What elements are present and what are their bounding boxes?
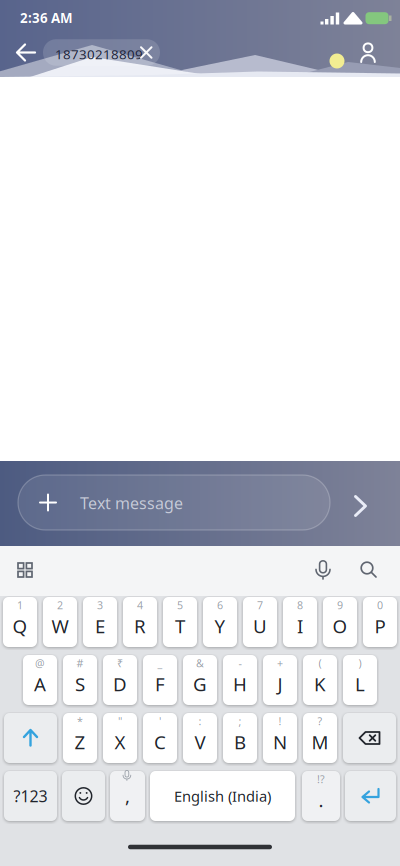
staticText: '	[159, 714, 161, 728]
staticText: W	[51, 614, 68, 638]
staticText: D	[113, 672, 127, 696]
staticText: ?123	[13, 785, 47, 807]
button[interactable]: Back	[15, 42, 37, 62]
staticText: Z	[74, 730, 85, 754]
button[interactable]: Search	[360, 561, 377, 578]
button[interactable]: Send	[353, 494, 367, 517]
staticText: C	[154, 730, 166, 754]
staticText: V	[194, 730, 205, 754]
button[interactable]: 4	[123, 597, 157, 647]
button[interactable]: English (India)	[150, 771, 295, 821]
staticText: M	[311, 730, 328, 754]
button[interactable]: _	[143, 655, 177, 705]
staticText: I	[297, 614, 303, 638]
button[interactable]: Text message	[18, 475, 330, 530]
button[interactable]: Shift	[4, 713, 57, 763]
button[interactable]: 0	[363, 597, 397, 647]
staticText: E	[95, 614, 105, 638]
staticText: H	[233, 672, 247, 696]
button[interactable]: (	[303, 655, 337, 705]
button[interactable]: '	[143, 713, 177, 763]
staticText: L	[355, 672, 365, 696]
staticText: X	[114, 730, 125, 754]
staticText: J	[277, 672, 282, 696]
button[interactable]: !	[263, 713, 297, 763]
staticText: ₹	[117, 656, 123, 670]
staticText: 5	[177, 598, 183, 612]
staticText: +	[277, 656, 283, 670]
button[interactable]: ₹	[103, 655, 137, 705]
staticText: F	[155, 672, 165, 696]
staticText: 2:36 AM	[20, 9, 73, 27]
staticText: @	[35, 656, 45, 670]
staticText: (	[318, 656, 321, 670]
staticText: ;	[238, 714, 241, 728]
button[interactable]: Keyboard options	[17, 562, 33, 578]
button[interactable]: :	[183, 713, 217, 763]
button[interactable]: "	[103, 713, 137, 763]
button[interactable]: Add contact	[357, 42, 379, 63]
staticText: 4	[137, 598, 143, 612]
button[interactable]: 1	[3, 597, 37, 647]
staticText: English (India)	[174, 786, 271, 806]
staticText: 9	[337, 598, 343, 612]
staticText: #	[76, 656, 83, 670]
staticText: Q	[12, 614, 27, 638]
staticText: S	[75, 672, 85, 696]
button[interactable]: 9	[323, 597, 357, 647]
staticText: P	[374, 614, 385, 638]
staticText: :	[198, 714, 201, 728]
button[interactable]: 3	[83, 597, 117, 647]
staticText: N	[273, 730, 287, 754]
staticText: -	[238, 656, 241, 670]
staticText: 1	[17, 598, 23, 612]
button[interactable]: *	[63, 713, 97, 763]
button[interactable]: +	[263, 655, 297, 705]
staticText: T	[175, 614, 185, 638]
button[interactable]: Voice input	[315, 560, 331, 580]
staticText: "	[118, 714, 122, 728]
staticText: 2	[57, 598, 63, 612]
staticText: ?	[317, 714, 322, 728]
button[interactable]: ?	[303, 713, 337, 763]
button[interactable]: @	[23, 655, 57, 705]
button[interactable]: -	[223, 655, 257, 705]
button[interactable]: )	[343, 655, 377, 705]
staticText: )	[358, 656, 361, 670]
staticText: 18730218809	[55, 45, 143, 63]
staticText: !	[278, 714, 281, 728]
staticText: &	[196, 656, 204, 670]
button[interactable]: #	[63, 655, 97, 705]
button[interactable]: Delete	[343, 713, 396, 763]
staticText: !?	[317, 772, 325, 786]
staticText: .	[318, 788, 323, 812]
staticText: _	[157, 656, 162, 670]
staticText: R	[134, 614, 146, 638]
button[interactable]: &	[183, 655, 217, 705]
button[interactable]: Enter	[345, 771, 396, 821]
button[interactable]: ;	[223, 713, 257, 763]
staticText: B	[234, 730, 246, 754]
staticText: Text message	[80, 492, 183, 514]
staticText: ,	[125, 784, 130, 808]
staticText: G	[193, 672, 207, 696]
staticText: K	[314, 672, 326, 696]
button[interactable]: 5	[163, 597, 197, 647]
button[interactable]: 8	[283, 597, 317, 647]
staticText: 3	[97, 598, 103, 612]
staticText: 7	[257, 598, 263, 612]
staticText: A	[34, 672, 46, 696]
button[interactable]: !?	[302, 771, 340, 821]
button[interactable]: 6	[203, 597, 237, 647]
button[interactable]: 7	[243, 597, 277, 647]
staticText: Y	[214, 614, 225, 638]
button[interactable]: Emoji	[62, 771, 105, 821]
button[interactable]: Remove recipient 18730218809	[43, 39, 160, 66]
button[interactable]: 2	[43, 597, 77, 647]
button[interactable]: ?123	[4, 771, 57, 821]
staticText: U	[253, 614, 267, 638]
button[interactable]: ,	[110, 771, 145, 821]
staticText: 0	[377, 598, 383, 612]
staticText: *	[77, 714, 83, 728]
staticText: 6	[217, 598, 223, 612]
